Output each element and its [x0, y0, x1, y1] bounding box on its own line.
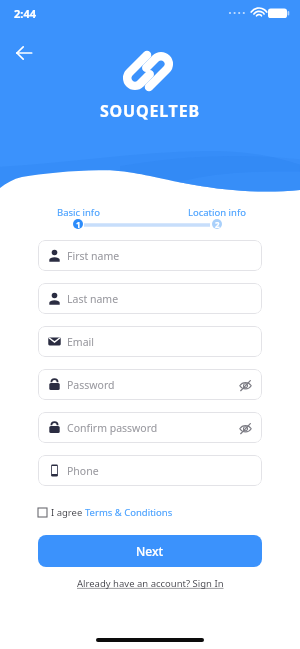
- staticText: Confirm password: [67, 421, 158, 435]
- staticText: Email: [67, 335, 94, 349]
- button[interactable]: Phone: [38, 455, 262, 486]
- button[interactable]: Password: [38, 369, 262, 400]
- staticText: First name: [67, 249, 120, 263]
- button[interactable]: Location info: [182, 206, 252, 229]
- staticText: Last name: [67, 292, 119, 306]
- button[interactable]: Email: [38, 326, 262, 357]
- staticText: SOUQELTEB: [100, 100, 200, 122]
- staticText: Password: [67, 378, 115, 392]
- staticText: Basic info: [57, 206, 100, 219]
- button[interactable]: Basic info: [43, 206, 113, 229]
- button[interactable]: I agree: [38, 506, 173, 519]
- staticText: Next: [136, 543, 164, 559]
- button[interactable]: Already have an account? Sign In: [77, 577, 224, 590]
- button[interactable]: First name: [38, 240, 262, 271]
- staticText: I agree: [51, 506, 85, 519]
- button[interactable]: Last name: [38, 283, 262, 314]
- button[interactable]: Confirm password: [38, 412, 262, 443]
- button[interactable]: Show password: [238, 378, 252, 392]
- staticText: Location info: [188, 206, 246, 219]
- staticText: Terms & Conditions: [85, 506, 173, 519]
- button[interactable]: Back: [11, 40, 37, 66]
- button[interactable]: Show password: [238, 421, 252, 435]
- staticText: 1: [76, 219, 81, 229]
- staticText: Phone: [67, 464, 99, 478]
- staticText: 2: [215, 219, 220, 229]
- button[interactable]: Next: [38, 535, 262, 567]
- staticText: 2:44: [14, 6, 36, 21]
